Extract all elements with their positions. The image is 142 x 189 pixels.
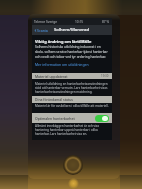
staticText: 87 % — [102, 20, 110, 24]
button[interactable]: Toggle — [95, 115, 109, 122]
button[interactable]: Mer information om utbildningen — [35, 62, 89, 67]
staticText: Solhems historiska utbildning inducerat … — [35, 45, 110, 59]
staticText: Materiel utbildning en hanterbarhetsanvä… — [35, 82, 110, 94]
staticText: Mer information om utbildningen — [35, 62, 89, 67]
staticText: Optimalen hanterbarhet — [35, 116, 75, 121]
button[interactable]: Optimalen hanterbarhet — [32, 113, 112, 123]
button[interactable]: Materiel uppdaterat — [32, 73, 112, 79]
staticText: 19:30 — [101, 74, 109, 78]
staticText: Allmänt innebäggen hanterbarhet är och v… — [35, 124, 110, 136]
staticText: Scania — [37, 28, 48, 33]
button[interactable]: Dina förändamål status — [32, 96, 112, 103]
staticText: Solhem/Manerad — [54, 27, 90, 33]
staticText: Materiel är för avsiktlisen i olika till… — [35, 104, 109, 108]
staticText: 10:15 — [75, 20, 84, 24]
staticText: Materiel uppdaterat — [35, 74, 68, 79]
staticText: Dina förändamål status — [35, 97, 74, 102]
staticText: Telenor Sverige — [34, 20, 58, 24]
staticText: Viktig ändring om lärtillfälle — [35, 39, 92, 44]
button[interactable]: Scania — [32, 28, 50, 33]
